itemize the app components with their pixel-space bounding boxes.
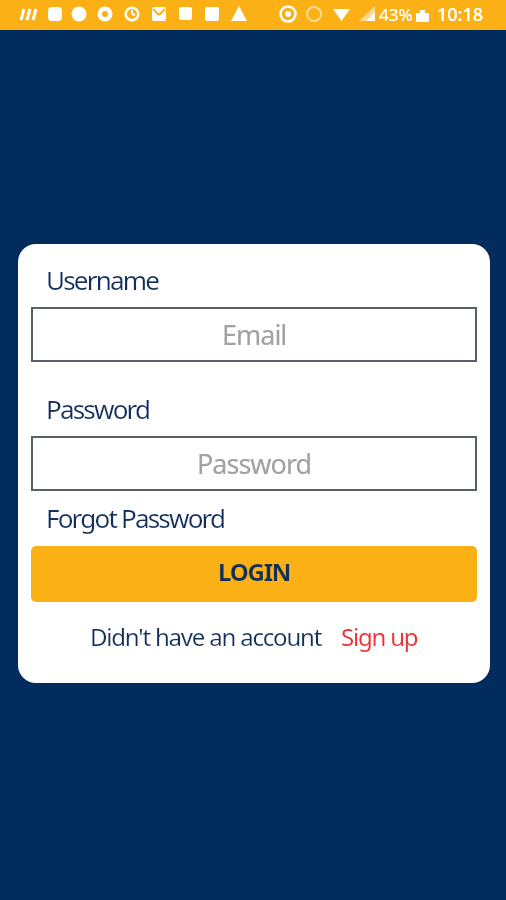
staticText: Password <box>197 445 312 482</box>
button[interactable]: Sign up <box>341 620 418 653</box>
staticText: 43% <box>379 3 413 26</box>
staticText: Didn't have an account <box>90 620 322 653</box>
staticText: 10:18 <box>437 2 484 27</box>
staticText: Password <box>46 391 150 426</box>
staticText: Sign up <box>341 620 418 653</box>
button[interactable]: Password <box>31 436 477 491</box>
button[interactable]: Forgot Password <box>46 500 225 535</box>
staticText: Forgot Password <box>46 500 225 535</box>
staticText: LOGIN <box>218 555 291 588</box>
button[interactable]: LOGIN <box>31 546 477 602</box>
button[interactable]: Email <box>31 307 477 362</box>
staticText: Username <box>46 262 159 297</box>
staticText: Email <box>222 316 287 353</box>
